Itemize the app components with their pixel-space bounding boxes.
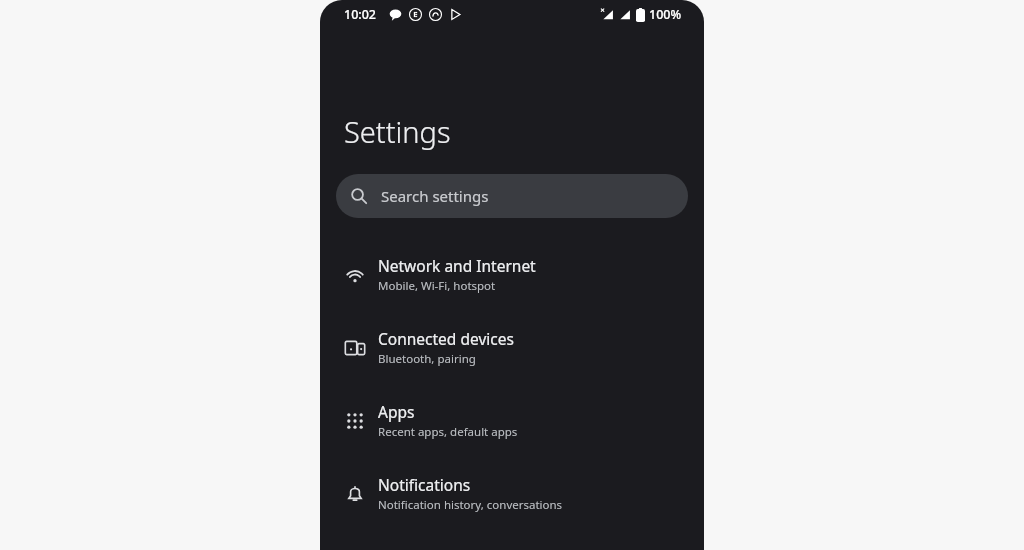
staticText: Bluetooth, pairing (378, 351, 476, 367)
staticText: Settings (344, 112, 451, 151)
staticText: Mobile, Wi-Fi, hotspot (378, 278, 496, 294)
staticText: Network and Internet (378, 255, 536, 276)
staticText: Notification history, conversations (378, 497, 563, 513)
staticText: 100% (649, 6, 682, 23)
staticText: Connected devices (378, 328, 514, 349)
staticText: Search settings (381, 186, 489, 206)
button[interactable]: Connected devices (320, 311, 704, 384)
staticText: Recent apps, default apps (378, 424, 518, 440)
button[interactable]: Search settings (336, 174, 688, 218)
staticText: Notifications (378, 474, 471, 495)
staticText: 10:02 (344, 6, 377, 23)
button[interactable]: Notifications (320, 457, 704, 530)
button[interactable]: Apps (320, 384, 704, 457)
button[interactable]: Network and Internet (320, 238, 704, 311)
staticText: Apps (378, 401, 415, 422)
